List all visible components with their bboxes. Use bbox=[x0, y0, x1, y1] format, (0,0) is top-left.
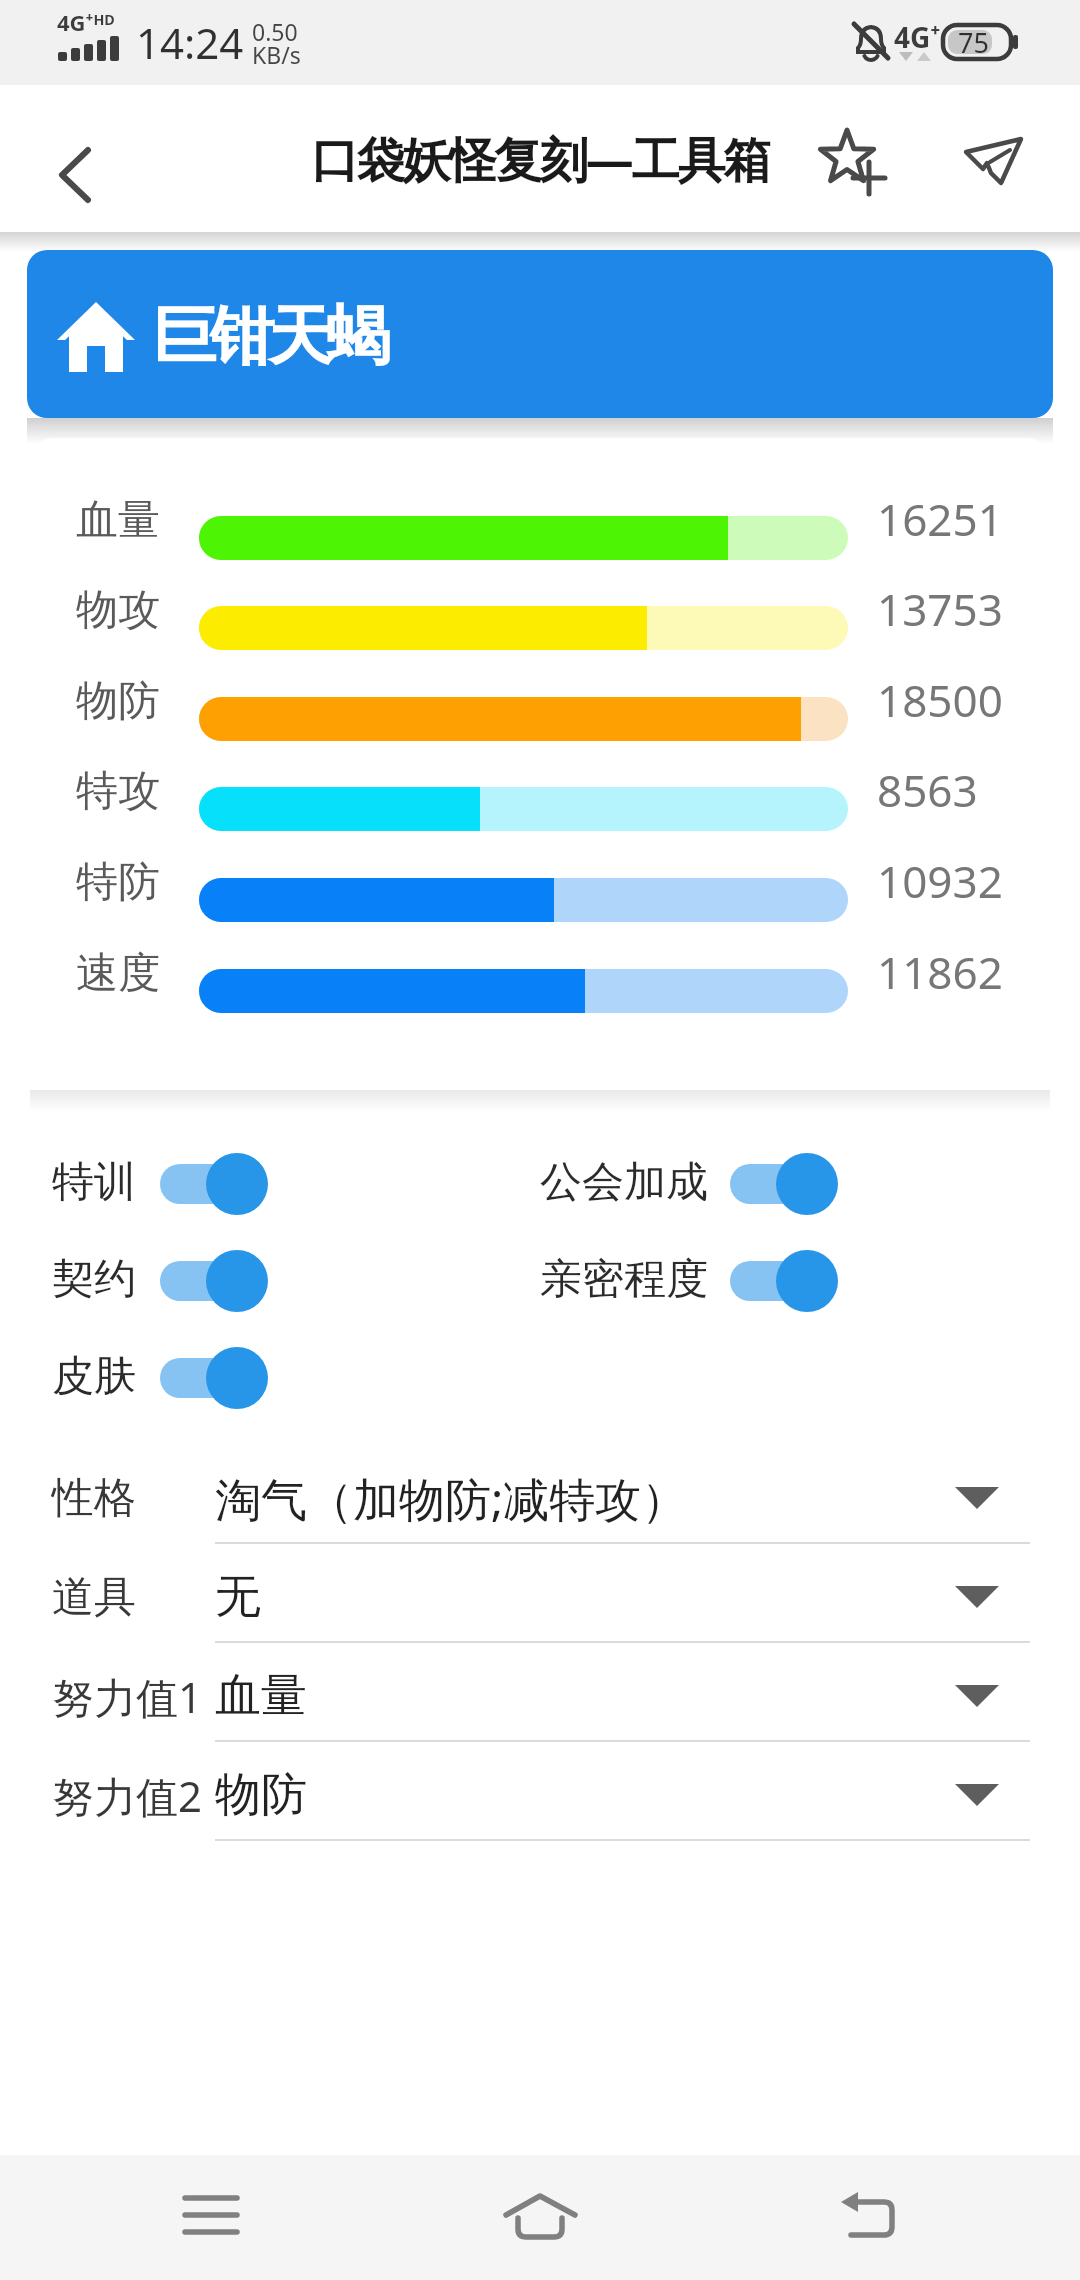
staticText: 14:24 bbox=[136, 14, 244, 71]
staticText: 努力值2 bbox=[52, 1767, 203, 1824]
staticText: 血量 bbox=[76, 494, 160, 547]
button[interactable] bbox=[160, 1347, 268, 1409]
staticText: 4G⁺ᴴᴰ bbox=[57, 7, 115, 37]
button[interactable] bbox=[160, 1153, 268, 1215]
staticText: 公会加成 bbox=[540, 1156, 708, 1209]
button[interactable]: 巨钳天蝎 bbox=[27, 250, 1053, 418]
button[interactable] bbox=[495, 2171, 585, 2261]
staticText: 道具 bbox=[52, 1571, 136, 1624]
staticText: 口袋妖怪复刻—工具箱 bbox=[311, 126, 770, 192]
button[interactable]: 淘气（加物防;减特攻） bbox=[215, 1450, 1030, 1546]
staticText: 0.50 bbox=[252, 16, 298, 47]
button[interactable] bbox=[40, 137, 110, 207]
button[interactable]: 血量 bbox=[215, 1648, 1030, 1744]
button[interactable] bbox=[805, 120, 890, 205]
staticText: 特攻 bbox=[76, 765, 160, 818]
staticText: 物防 bbox=[76, 675, 160, 728]
staticText: 皮肤 bbox=[52, 1350, 136, 1403]
button[interactable] bbox=[730, 1153, 838, 1215]
staticText: 4G⁺ bbox=[894, 18, 941, 56]
staticText: 特训 bbox=[52, 1156, 136, 1209]
staticText: KB/s bbox=[252, 39, 301, 70]
button[interactable] bbox=[160, 1250, 268, 1312]
staticText: 10932 bbox=[877, 851, 1003, 911]
staticText: 血量 bbox=[215, 1667, 307, 1725]
staticText: 物攻 bbox=[76, 584, 160, 637]
staticText: 75 bbox=[958, 24, 989, 61]
staticText: 无 bbox=[215, 1568, 261, 1626]
button[interactable]: 无 bbox=[215, 1549, 1030, 1645]
button[interactable] bbox=[950, 120, 1035, 205]
staticText: 物防 bbox=[215, 1766, 307, 1824]
staticText: 16251 bbox=[877, 489, 1003, 549]
staticText: 亲密程度 bbox=[540, 1253, 708, 1306]
staticText: 速度 bbox=[76, 947, 160, 1000]
staticText: 巨钳天蝎 bbox=[155, 296, 387, 377]
staticText: 努力值1 bbox=[52, 1668, 203, 1725]
staticText: 11862 bbox=[877, 942, 1003, 1002]
staticText: 契约 bbox=[52, 1253, 136, 1306]
button[interactable] bbox=[730, 1250, 838, 1312]
button[interactable]: 物防 bbox=[215, 1747, 1030, 1843]
staticText: 18500 bbox=[877, 670, 1003, 730]
button[interactable] bbox=[825, 2171, 915, 2261]
staticText: 8563 bbox=[877, 760, 978, 820]
staticText: 特防 bbox=[76, 856, 160, 909]
staticText: 性格 bbox=[52, 1472, 136, 1525]
button[interactable] bbox=[166, 2171, 256, 2261]
staticText: 13753 bbox=[877, 579, 1003, 639]
staticText: 淘气（加物防;减特攻） bbox=[215, 1467, 688, 1530]
